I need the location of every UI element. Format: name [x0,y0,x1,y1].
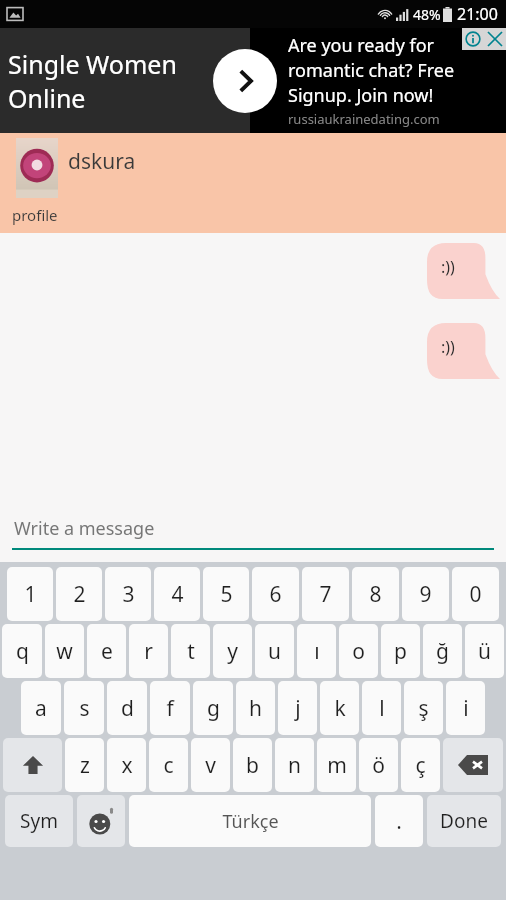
button[interactable]: 7 [302,567,349,621]
button[interactable]: ı [297,624,336,678]
button[interactable]: v [191,738,230,792]
staticText: m [327,751,347,780]
staticText: q [16,637,29,666]
button[interactable]: 4 [154,567,200,621]
staticText: x [121,751,133,780]
staticText: w [56,637,73,666]
staticText: d [121,694,134,723]
button[interactable]: h [236,681,275,735]
button[interactable]: k [320,681,359,735]
staticText: ş [418,694,429,723]
staticText: b [246,751,259,780]
button[interactable]: ğ [423,624,462,678]
button[interactable]: y [213,624,252,678]
button[interactable]: b [233,738,272,792]
staticText: ö [372,751,385,780]
button[interactable]: Open ad [213,49,277,113]
button[interactable]: . [375,795,423,847]
staticText: g [207,694,220,723]
staticText: e [101,637,113,666]
staticText: 6 [269,580,282,609]
staticText: Sym [20,808,58,834]
button[interactable]: d [107,681,147,735]
button[interactable]: Write a message [0,500,506,562]
staticText: dskura [68,147,136,176]
button[interactable]: 0 [452,567,499,621]
button[interactable]: e [87,624,126,678]
button[interactable]: u [255,624,294,678]
staticText: ç [415,751,426,780]
staticText: :)) [441,336,455,358]
staticText: Write a message [14,516,155,541]
button[interactable]: 9 [402,567,449,621]
staticText: Single Women [8,47,177,81]
button[interactable]: ş [404,681,443,735]
staticText: f [166,694,174,723]
staticText: romantic chat? Free [288,58,455,83]
button[interactable]: :)) [427,243,500,299]
button[interactable]: t [171,624,210,678]
button[interactable]: 5 [203,567,249,621]
staticText: Signup. Join now! [288,83,434,108]
button[interactable]: Close ad [484,28,506,50]
staticText: 8 [369,580,382,609]
button[interactable]: Single Women [0,28,506,133]
button[interactable]: Done [427,795,501,847]
staticText: 5 [220,580,233,609]
staticText: 9 [419,580,432,609]
staticText: k [334,694,346,723]
button[interactable]: Sym [5,795,73,847]
staticText: :)) [441,256,455,278]
button[interactable]: p [381,624,420,678]
button[interactable]: ü [465,624,504,678]
button[interactable]: ö [359,738,398,792]
button[interactable]: Türkçe [129,795,371,847]
button[interactable]: r [129,624,168,678]
button[interactable]: 3 [105,567,151,621]
button[interactable]: 1 [7,567,53,621]
staticText: r [144,637,153,666]
staticText: 1 [24,580,37,609]
staticText: j [295,694,301,723]
staticText: Are you ready for [288,33,435,58]
button[interactable]: x [107,738,146,792]
button[interactable]: g [193,681,233,735]
button[interactable]: Shift [3,738,62,792]
button[interactable]: c [149,738,188,792]
button[interactable]: q [2,624,42,678]
staticText: v [205,751,216,780]
staticText: 2 [73,580,86,609]
button[interactable]: f [150,681,190,735]
button[interactable]: Backspace [443,738,503,792]
button[interactable]: s [64,681,104,735]
staticText: 48% [413,5,441,24]
staticText: 7 [319,580,332,609]
staticText: o [352,637,365,666]
button[interactable]: j [278,681,317,735]
staticText: a [35,694,47,723]
button[interactable]: 6 [252,567,299,621]
staticText: u [268,637,281,666]
button[interactable]: w [45,624,84,678]
button[interactable]: i [446,681,485,735]
staticText: ü [478,637,491,666]
button[interactable]: 2 [56,567,102,621]
button[interactable]: n [275,738,314,792]
staticText: 0 [469,580,482,609]
staticText: ğ [436,637,449,666]
staticText: Online [8,81,86,115]
button[interactable]: Ad info [462,28,484,50]
button[interactable]: z [65,738,104,792]
button[interactable]: l [362,681,401,735]
staticText: p [394,637,407,666]
button[interactable]: Emoji [77,795,125,847]
button[interactable]: :)) [427,323,500,379]
button[interactable]: dskura [0,133,506,233]
button[interactable]: o [339,624,378,678]
button[interactable]: m [317,738,356,792]
staticText: . [396,807,402,836]
button[interactable]: a [21,681,61,735]
button[interactable]: 8 [352,567,399,621]
button[interactable]: ç [401,738,440,792]
staticText: 21:00 [457,3,498,25]
